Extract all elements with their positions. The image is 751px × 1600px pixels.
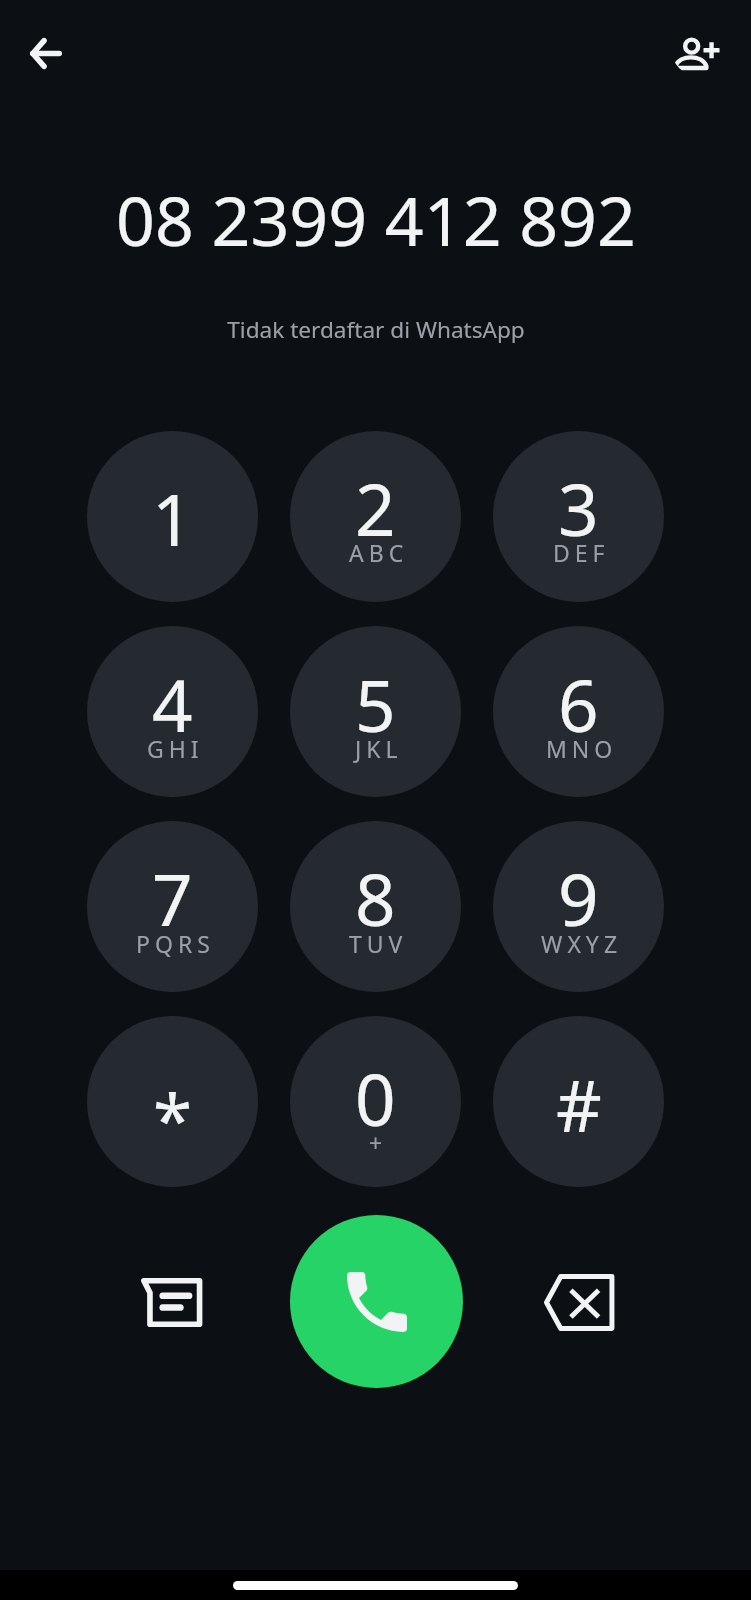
button[interactable]: Add contact (672, 27, 720, 75)
staticText: 7 (152, 850, 193, 947)
staticText: JKL (355, 733, 403, 764)
staticText: * (153, 1070, 193, 1167)
button[interactable]: 2 (290, 431, 461, 602)
button[interactable]: * (87, 1016, 258, 1187)
staticText: 5 (355, 656, 396, 753)
staticText: 9 (558, 850, 599, 947)
staticText: Tidak terdaftar di WhatsApp (227, 314, 525, 345)
staticText: 3 (558, 460, 599, 557)
button[interactable]: 3 (493, 431, 664, 602)
button[interactable]: 9 (493, 821, 664, 992)
button[interactable]: Send message (128, 1258, 217, 1347)
button[interactable]: 8 (290, 821, 461, 992)
button[interactable]: Back (22, 29, 70, 77)
staticText: 6 (558, 656, 599, 753)
staticText: + (369, 1127, 388, 1158)
staticText: 8 (355, 850, 396, 947)
button[interactable]: 1 (87, 431, 258, 602)
staticText: 4 (152, 656, 193, 753)
button[interactable]: 5 (290, 626, 461, 797)
staticText: ABC (349, 537, 409, 568)
button[interactable]: 7 (87, 821, 258, 992)
staticText: 2 (355, 460, 396, 557)
button[interactable]: # (493, 1016, 664, 1187)
staticText: 0 (355, 1050, 396, 1147)
staticText: GHI (147, 733, 204, 764)
staticText: TUV (349, 928, 408, 959)
staticText: PQRS (136, 928, 215, 959)
staticText: 08 2399 412 892 (116, 173, 636, 266)
button[interactable]: 6 (493, 626, 664, 797)
staticText: DEF (553, 537, 610, 568)
button[interactable]: Backspace (534, 1257, 624, 1347)
staticText: WXYZ (541, 928, 623, 959)
button[interactable]: 4 (87, 626, 258, 797)
staticText: MNO (546, 733, 618, 764)
staticText: 1 (152, 470, 193, 567)
staticText: # (556, 1056, 602, 1153)
button[interactable]: 0 (290, 1016, 461, 1187)
button[interactable]: Call (290, 1215, 463, 1388)
